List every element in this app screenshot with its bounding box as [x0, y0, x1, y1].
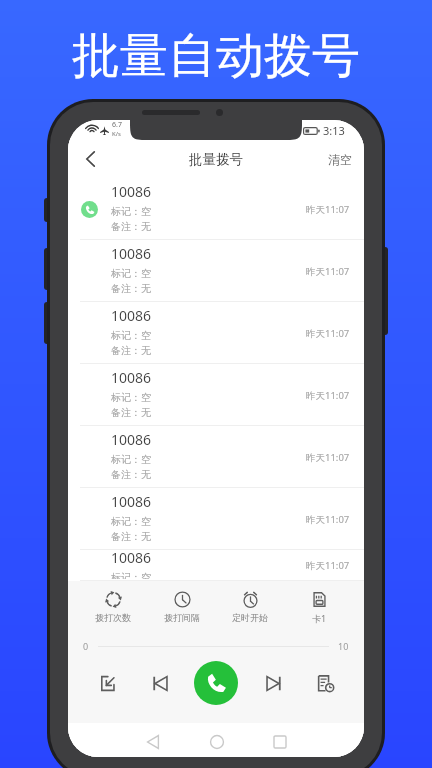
staticText: 10086 [111, 548, 152, 567]
staticText: 10086 [111, 244, 152, 263]
staticText: 10 [338, 640, 349, 652]
staticText: 昨天11:07 [306, 389, 350, 402]
button[interactable]: Home [205, 730, 229, 754]
staticText: 10086 [111, 430, 152, 449]
staticText: 批量自动拨号 [72, 26, 360, 86]
button[interactable]: 10086 [68, 240, 364, 302]
staticText: 备注：无 [111, 406, 151, 419]
button[interactable]: Back [68, 140, 112, 178]
staticText: 昨天11:07 [306, 203, 350, 216]
staticText: 3:13 [323, 123, 345, 138]
staticText: 10086 [111, 182, 152, 201]
staticText: 卡1 [312, 612, 327, 624]
button[interactable]: 拨打间隔 [160, 585, 204, 623]
staticText: 标记：空 [111, 205, 151, 218]
button[interactable]: 清空 [328, 140, 352, 178]
button[interactable]: 定时开始 [228, 585, 272, 623]
staticText: K/s [112, 130, 121, 138]
staticText: 昨天11:07 [306, 513, 350, 526]
button[interactable]: Import [89, 665, 125, 701]
button[interactable]: Recents [268, 730, 292, 754]
staticText: 备注：无 [111, 468, 151, 481]
staticText: 定时开始 [232, 612, 268, 623]
button[interactable]: 10086 [68, 364, 364, 426]
button[interactable]: 10086 [68, 302, 364, 364]
staticText: 备注：无 [111, 220, 151, 233]
staticText: 昨天11:07 [306, 451, 350, 464]
staticText: 标记：空 [111, 515, 151, 528]
staticText: 标记：空 [111, 571, 151, 579]
button[interactable]: Back [141, 730, 165, 754]
staticText: 备注：无 [111, 530, 151, 543]
button[interactable]: 拨打次数 [91, 585, 135, 623]
button[interactable]: Call [194, 661, 238, 705]
staticText: 昨天11:07 [306, 559, 350, 572]
button[interactable]: Previous [142, 665, 178, 701]
staticText: 10086 [111, 306, 152, 325]
staticText: 标记：空 [111, 267, 151, 280]
staticText: 昨天11:07 [306, 265, 350, 278]
staticText: 拨打间隔 [164, 612, 200, 623]
staticText: 10086 [111, 492, 152, 511]
staticText: 批量拨号 [189, 151, 243, 168]
staticText: 备注：无 [111, 282, 151, 295]
staticText: 拨打次数 [95, 612, 131, 623]
staticText: 10086 [111, 368, 152, 387]
staticText: 清空 [328, 152, 352, 167]
button[interactable]: 10086 [68, 426, 364, 488]
button[interactable]: 10086 [68, 488, 364, 550]
staticText: 标记：空 [111, 453, 151, 466]
button[interactable]: Next [255, 665, 291, 701]
button[interactable]: 卡1 [297, 585, 341, 624]
button[interactable]: 10086 [68, 550, 364, 581]
staticText: 6.7 [112, 120, 122, 130]
staticText: 昨天11:07 [306, 327, 350, 340]
staticText: 标记：空 [111, 329, 151, 342]
button[interactable]: History [307, 665, 343, 701]
button[interactable]: 10086 [68, 178, 364, 240]
staticText: 0 [83, 640, 89, 652]
staticText: 标记：空 [111, 391, 151, 404]
staticText: 备注：无 [111, 344, 151, 357]
